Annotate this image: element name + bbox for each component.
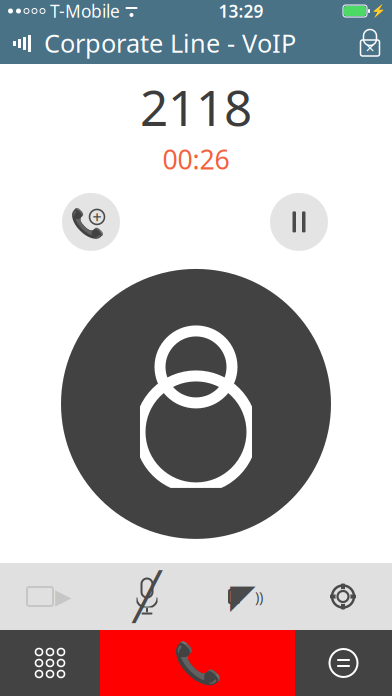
staticText: )) <box>255 587 263 606</box>
button[interactable]: Hold call <box>270 193 328 251</box>
staticText: Corporate Line - VoIP <box>44 26 296 60</box>
button[interactable]: Speaker <box>196 563 294 630</box>
staticText: ⚡ <box>371 4 386 18</box>
button[interactable]: Unmute microphone <box>98 563 196 630</box>
button[interactable]: End call <box>100 630 295 696</box>
staticText: 00:26 <box>162 141 229 177</box>
button[interactable]: Signal strength <box>0 22 44 64</box>
staticText: ╱ <box>133 571 160 622</box>
button[interactable]: Settings <box>294 563 392 630</box>
button[interactable]: Add call <box>62 193 120 251</box>
staticText: 2118 <box>140 74 252 139</box>
button[interactable]: Video <box>0 563 98 630</box>
staticText: ✕ <box>365 41 375 55</box>
button[interactable]: Keypad <box>0 630 100 696</box>
staticText: ◤ <box>230 578 256 615</box>
button[interactable]: Call not encrypted <box>348 22 392 64</box>
staticText: ▶ <box>55 584 71 609</box>
staticText: 13:29 <box>218 0 263 22</box>
staticText: + <box>92 206 101 227</box>
staticText: T-Mobile <box>50 0 120 22</box>
staticText: 📞 <box>70 207 105 239</box>
button[interactable]: Chat <box>295 630 392 696</box>
staticText: 📞 <box>172 640 222 686</box>
